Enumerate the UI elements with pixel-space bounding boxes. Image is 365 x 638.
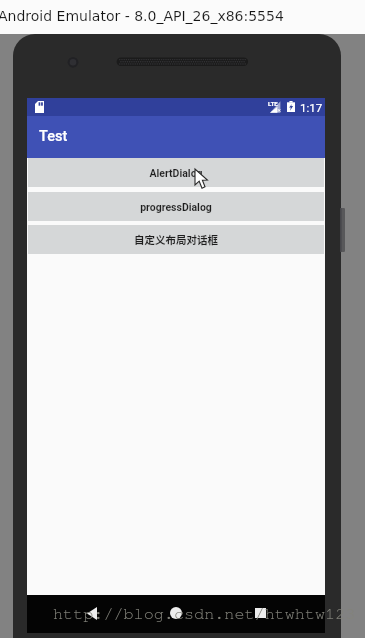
button[interactable]: Recent apps	[243, 596, 277, 630]
staticText: progressDialog	[140, 201, 212, 213]
staticText: http://blog.csdn.net/htwhtw123	[53, 606, 356, 623]
staticText: LTE	[268, 100, 278, 107]
button[interactable]: Home	[159, 596, 193, 630]
button[interactable]: 自定义布局对话框	[28, 225, 324, 254]
button[interactable]: progressDialog	[28, 192, 324, 221]
staticText: 1:17	[300, 101, 323, 114]
button[interactable]: AlertDialog	[28, 158, 324, 187]
staticText: AlertDialog	[149, 167, 203, 179]
staticText: Android Emulator - 8.0_API_26_x86:5554	[0, 8, 284, 24]
staticText: Test	[39, 128, 68, 145]
button[interactable]: Back	[75, 596, 109, 630]
staticText: 自定义布局对话框	[134, 232, 218, 247]
